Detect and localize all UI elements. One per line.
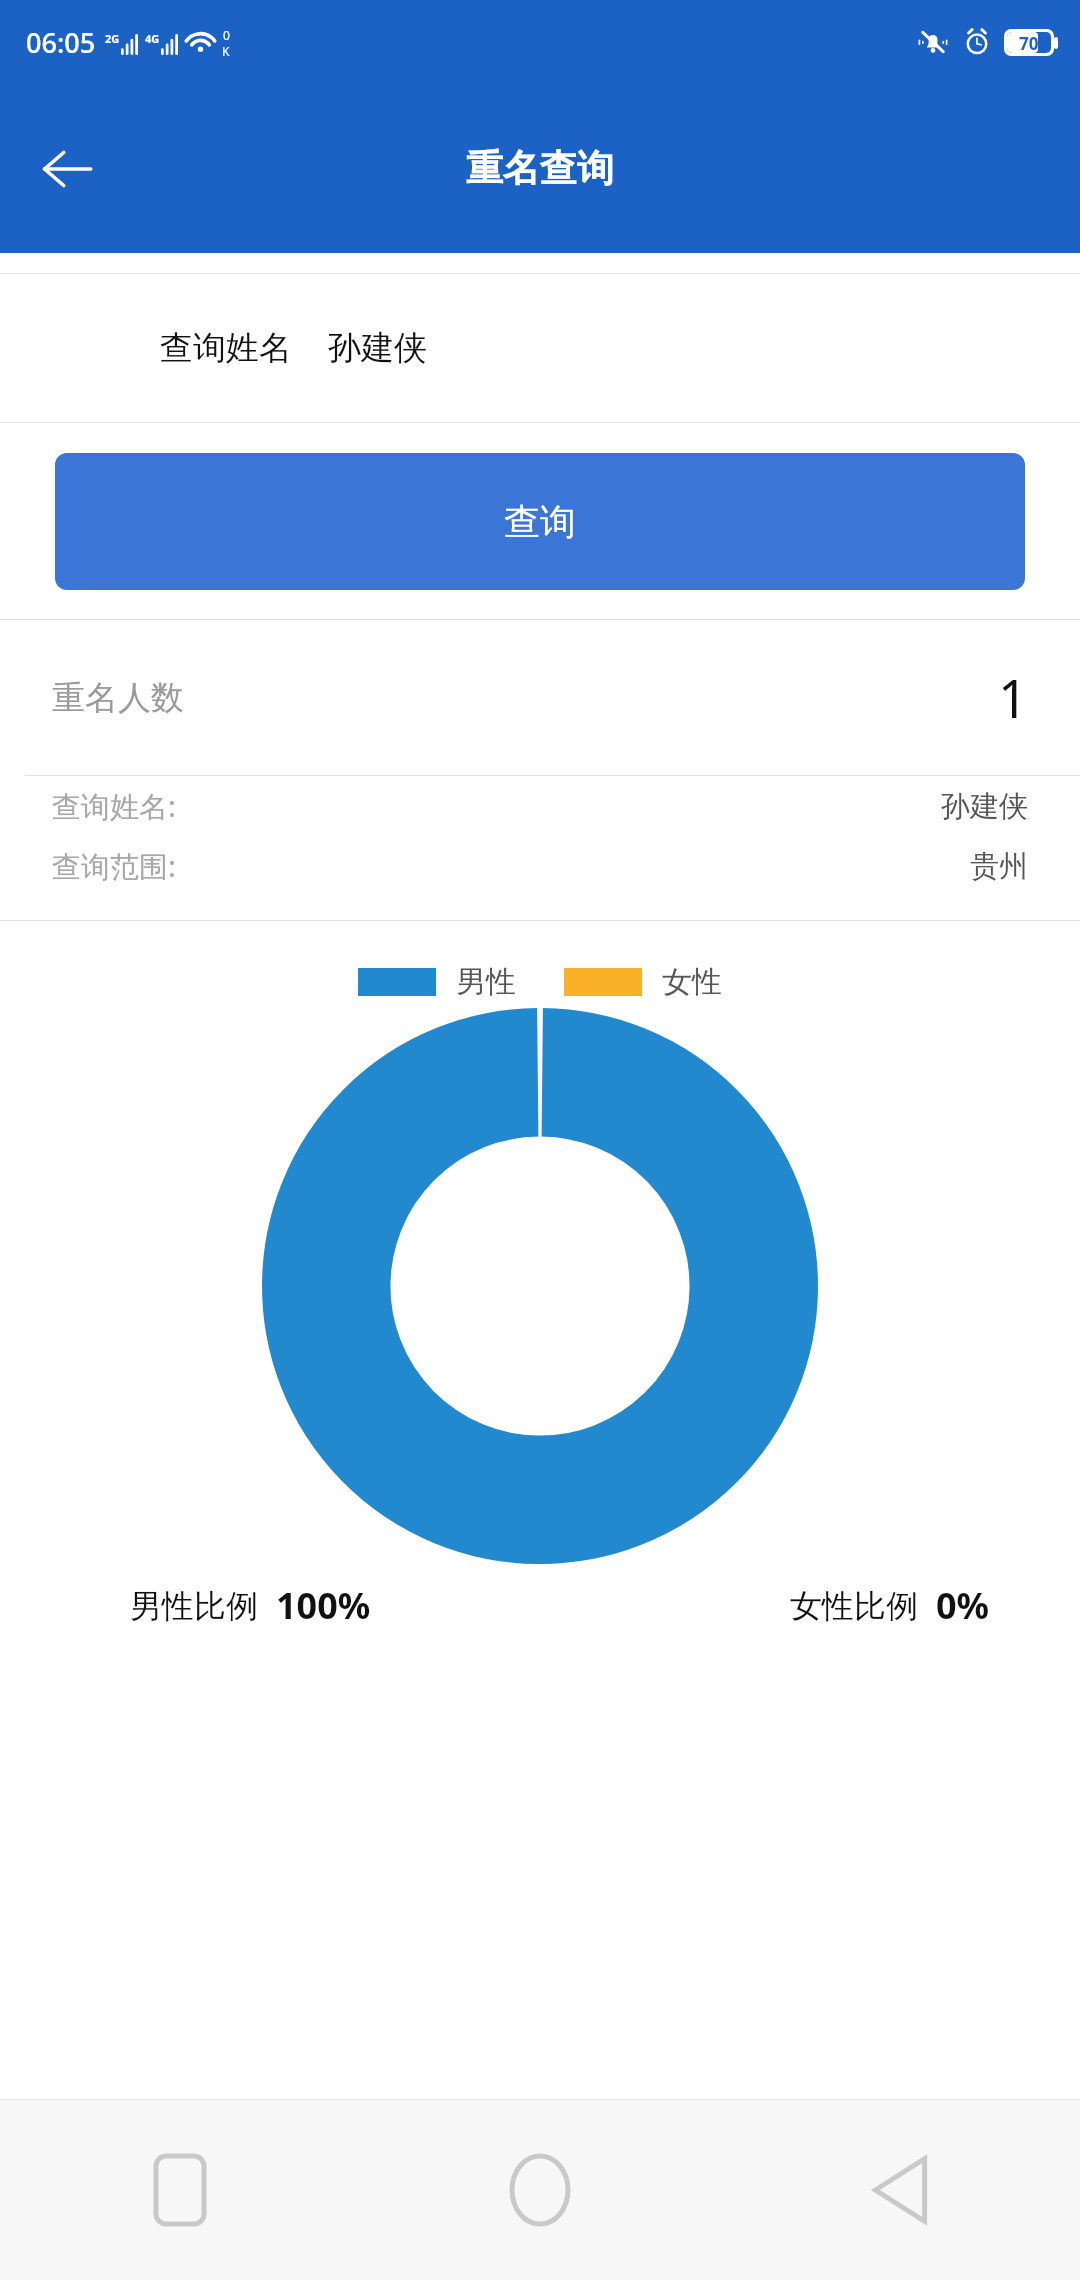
staticText: 男性 [456,963,516,1001]
staticText: 0% [936,1581,990,1630]
staticText: 查询范围: [52,846,176,886]
staticText: 女性比例 [790,1586,918,1626]
staticText: K [222,43,230,59]
staticText: 女性 [662,963,722,1001]
staticText: 男性比例 [130,1586,258,1626]
staticText: 查询 [504,499,576,544]
staticText: 4G [145,31,160,46]
staticText: 2G [105,31,120,46]
staticText: 孙建侠 [941,788,1028,825]
button[interactable]: Recents [0,2100,360,2280]
button[interactable]: 查询姓名 [0,274,1080,422]
staticText: 查询姓名 [160,327,292,369]
staticText: 0 [223,27,230,43]
staticText: 70 [1019,32,1039,53]
staticText: 孙建侠 [328,327,427,369]
button[interactable]: Back [34,136,100,202]
button[interactable]: Home [360,2100,720,2280]
staticText: 查询姓名: [52,786,176,826]
staticText: 06:05 [26,24,96,61]
staticText: 100% [276,1581,371,1630]
staticText: 1 [998,662,1028,733]
staticText: 贵州 [970,848,1028,885]
staticText: 重名人数 [52,677,184,719]
button[interactable]: 查询 [55,453,1025,590]
button[interactable]: Back [720,2100,1080,2280]
staticText: 重名查询 [466,145,614,192]
